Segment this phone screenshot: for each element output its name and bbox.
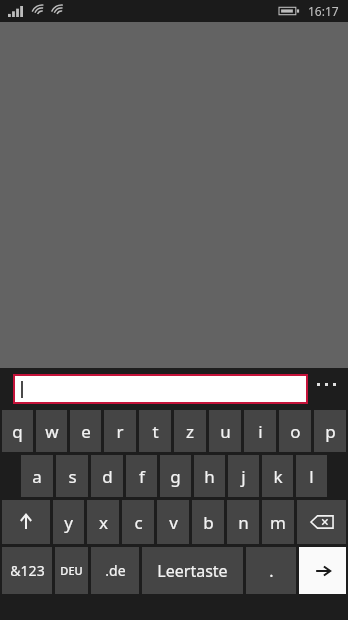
button[interactable]: k [262,455,293,497]
staticText: DEU [60,563,83,578]
button[interactable]: Backspace [297,500,346,544]
button[interactable]: . [246,547,296,594]
staticText: &123 [10,561,45,580]
button[interactable] [15,376,306,402]
staticText: a [32,465,42,488]
staticText: l [309,465,314,488]
staticText: u [220,420,231,443]
staticText: n [238,511,249,534]
staticText: d [102,465,113,488]
staticText: Leertaste [157,560,228,582]
button[interactable]: .de [91,547,139,594]
button[interactable]: e [70,410,101,452]
staticText: g [170,465,181,488]
staticText: p [325,420,336,443]
button[interactable]: w [36,410,67,452]
staticText: z [186,420,194,443]
staticText: w [45,420,59,443]
staticText: e [81,420,91,443]
button[interactable]: t [139,410,171,452]
button[interactable]: m [262,500,294,544]
button[interactable]: s [56,455,88,497]
button[interactable]: Leertaste [142,547,243,594]
button[interactable]: DEU [55,547,88,594]
staticText: b [203,511,214,534]
button[interactable]: Enter [299,547,346,594]
button[interactable]: x [87,500,119,544]
button[interactable]: r [104,410,136,452]
button[interactable]: q [2,410,33,452]
staticText: v [169,511,178,534]
staticText: 16:17 [308,3,339,19]
button[interactable]: Shift [2,500,50,544]
staticText: k [273,465,283,488]
button[interactable]: p [314,410,346,452]
staticText: c [134,511,143,534]
staticText: s [68,465,77,488]
button[interactable]: c [122,500,154,544]
button[interactable]: n [227,500,259,544]
button[interactable]: h [194,455,225,497]
button[interactable]: u [209,410,241,452]
staticText: f [139,465,145,488]
staticText: m [270,511,286,534]
button[interactable]: v [157,500,189,544]
staticText: i [258,420,263,443]
button[interactable]: l [296,455,327,497]
staticText: y [64,511,73,534]
staticText: . [269,560,274,582]
button[interactable]: &123 [2,547,52,594]
staticText: .de [105,561,126,580]
staticText: q [12,420,23,443]
button[interactable]: o [279,410,311,452]
button[interactable]: f [126,455,157,497]
button[interactable]: b [192,500,224,544]
staticText: j [241,465,246,488]
button[interactable]: i [244,410,276,452]
button[interactable]: a [21,455,53,497]
button[interactable]: y [53,500,84,544]
staticText: t [152,420,159,443]
button[interactable]: j [228,455,259,497]
staticText: o [290,420,301,443]
staticText: r [116,420,124,443]
button[interactable]: z [174,410,206,452]
staticText: h [204,465,215,488]
staticText: x [99,511,108,534]
button[interactable]: More options [311,376,341,392]
button[interactable]: d [91,455,123,497]
button[interactable]: g [160,455,191,497]
